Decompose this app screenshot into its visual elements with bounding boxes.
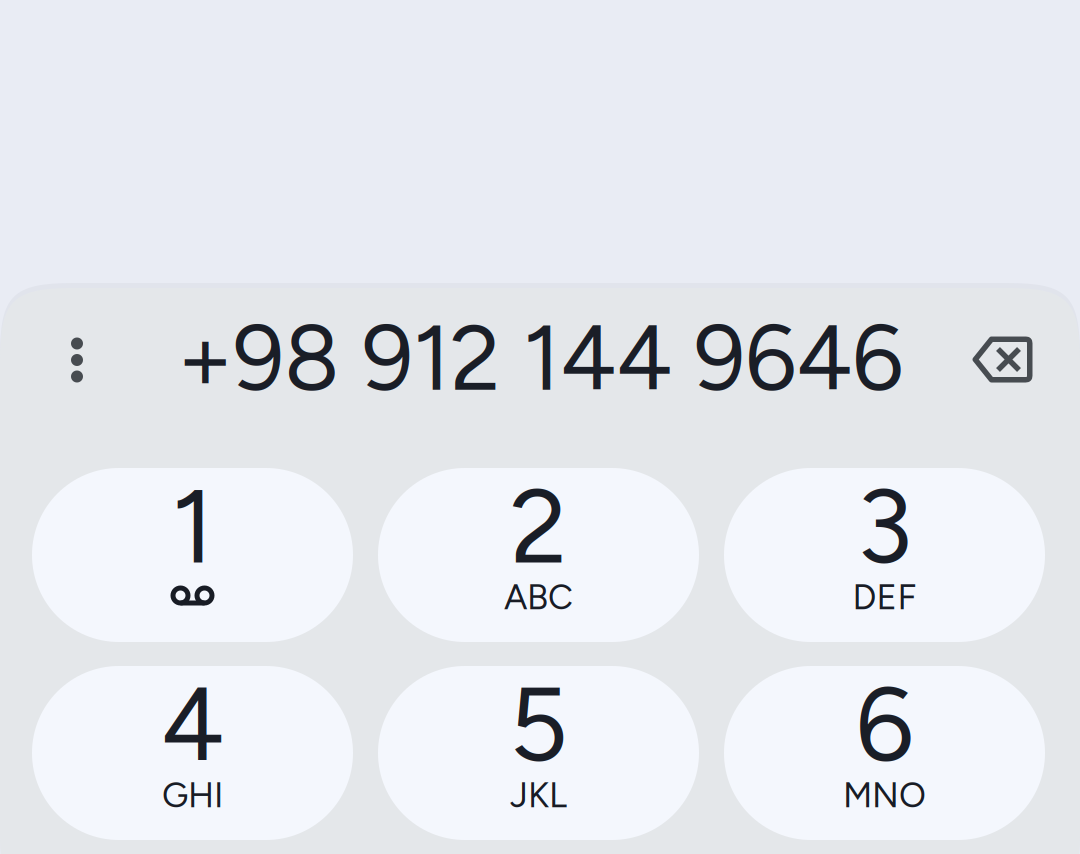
button[interactable]: More options xyxy=(29,312,125,408)
staticText: JKL xyxy=(510,774,567,816)
staticText: 5 xyxy=(509,663,568,786)
staticText: GHI xyxy=(162,774,223,816)
staticText: 4 xyxy=(160,663,224,786)
button[interactable]: 4 GHI xyxy=(32,666,353,840)
staticText: +98 912 144 9646 xyxy=(177,304,903,412)
staticText: DEF xyxy=(852,576,916,618)
staticText: 2 xyxy=(510,465,567,588)
staticText: ABC xyxy=(504,576,573,618)
button[interactable]: 1 voicemail xyxy=(32,468,353,642)
button[interactable]: 2 ABC xyxy=(378,468,699,642)
staticText: 1 xyxy=(171,465,213,588)
button[interactable]: Delete xyxy=(950,307,1054,411)
button[interactable]: 5 JKL xyxy=(378,666,699,840)
staticText: 3 xyxy=(856,465,912,588)
button[interactable]: 3 DEF xyxy=(724,468,1045,642)
staticText: 6 xyxy=(855,663,913,786)
button[interactable]: 6 MNO xyxy=(724,666,1045,840)
staticText: MNO xyxy=(843,774,926,816)
